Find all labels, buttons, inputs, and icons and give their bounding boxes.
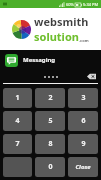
button[interactable]: Close <box>68 157 98 177</box>
button[interactable]: 7 <box>3 134 32 154</box>
button[interactable]: Messaging <box>0 50 101 70</box>
button[interactable]: 3 <box>68 88 98 108</box>
staticText: 2 <box>48 93 53 103</box>
button[interactable]: 5 <box>35 111 65 131</box>
button[interactable]: 8 <box>35 134 65 154</box>
staticText: 8 <box>48 139 53 149</box>
staticText: 5 <box>48 116 53 126</box>
staticText: 3 <box>81 93 86 103</box>
button[interactable]: 0 <box>35 157 65 177</box>
staticText: 7 <box>15 139 20 149</box>
staticText: 1 <box>15 93 20 103</box>
staticText: Close <box>75 163 91 171</box>
staticText: 60% <box>66 2 74 7</box>
button[interactable]: 9 <box>68 134 98 154</box>
staticText: 0 <box>48 162 53 172</box>
button[interactable]: Blank key <box>3 157 32 177</box>
staticText: 5:34 PM <box>83 2 99 7</box>
staticText: .com <box>79 38 89 43</box>
button[interactable]: 1 <box>3 88 32 108</box>
button[interactable]: 2 <box>35 88 65 108</box>
staticText: 4 <box>15 116 20 126</box>
button[interactable]: 6 <box>68 111 98 131</box>
staticText: 9 <box>81 139 86 149</box>
staticText: solution <box>34 29 79 44</box>
staticText: websmith <box>34 14 89 29</box>
button[interactable]: 4 <box>3 111 32 131</box>
button[interactable]: Backspace <box>87 73 96 80</box>
staticText: Messaging <box>23 56 56 64</box>
staticText: 6 <box>81 116 86 126</box>
